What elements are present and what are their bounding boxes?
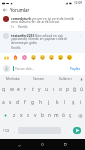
staticText: k	[56, 99, 59, 106]
button[interactable]: w	[8, 83, 15, 96]
button[interactable]: Home	[38, 140, 47, 149]
staticText: x	[20, 112, 23, 119]
staticText: q	[2, 86, 6, 93]
button[interactable]: k	[53, 96, 61, 109]
staticText: ı	[53, 86, 55, 93]
button[interactable]: ö	[60, 109, 67, 122]
button[interactable]: ,	[12, 127, 17, 134]
button[interactable]: Emoji	[38, 53, 47, 61]
button[interactable]: Back	[15, 141, 23, 149]
staticText: t	[32, 86, 34, 93]
staticText: ç	[69, 112, 72, 119]
button[interactable]: Kullanici	[52, 75, 78, 83]
staticText: 12:09	[74, 1, 83, 5]
staticText: y	[38, 86, 41, 93]
staticText: ü	[80, 86, 84, 93]
staticText: m	[54, 112, 59, 119]
button[interactable]: Recents	[61, 140, 70, 149]
button[interactable]: Emoji	[11, 53, 20, 61]
button[interactable]: u	[43, 83, 50, 96]
button[interactable]: m	[53, 109, 60, 122]
button[interactable]: Emoji	[65, 53, 74, 61]
staticText: Yanitla	[18, 25, 28, 29]
button[interactable]: Emoji	[47, 53, 56, 61]
staticText: ğ	[73, 86, 77, 93]
button[interactable]: Merhaba	[0, 75, 26, 83]
button[interactable]: s	[7, 96, 14, 109]
button[interactable]: y	[36, 83, 43, 96]
staticText: u	[45, 86, 49, 93]
staticText: z	[13, 112, 16, 119]
staticText: o	[59, 86, 62, 93]
button[interactable]: r	[22, 83, 29, 96]
button[interactable]: l	[61, 96, 69, 109]
button[interactable]: z	[11, 109, 18, 122]
button[interactable]: p	[64, 83, 71, 96]
button[interactable]: b	[39, 109, 46, 122]
staticText: g	[31, 99, 35, 106]
button[interactable]: t	[29, 83, 36, 96]
button[interactable]: Emoji	[56, 53, 65, 61]
staticText: v	[34, 112, 37, 119]
staticText: p	[66, 86, 70, 93]
button[interactable]: x	[18, 109, 25, 122]
staticText: b	[41, 112, 45, 119]
button[interactable]: Back	[0, 6, 10, 14]
button[interactable]: Paylas	[69, 65, 82, 71]
button[interactable]: c	[25, 109, 32, 122]
button[interactable]: Emoji	[29, 53, 38, 61]
button[interactable]: q	[0, 83, 8, 96]
staticText: d	[16, 99, 20, 106]
button[interactable]: ç	[67, 109, 74, 122]
staticText: Yorum ekle...	[15, 67, 35, 71]
button[interactable]: Emoji	[20, 53, 29, 61]
staticText: n	[48, 112, 52, 119]
staticText: j	[48, 99, 50, 106]
staticText: s	[9, 99, 12, 106]
staticText: Paylas	[70, 66, 81, 70]
staticText: ş	[72, 99, 75, 106]
button[interactable]: v	[32, 109, 39, 122]
button[interactable]: e	[15, 83, 22, 96]
button[interactable]: f	[21, 96, 29, 109]
staticText: ö	[62, 112, 65, 119]
button[interactable]: g	[29, 96, 37, 109]
button[interactable]: d	[14, 96, 21, 109]
button[interactable]: Backspace	[74, 109, 85, 122]
staticText: Kullanici	[59, 77, 72, 81]
button[interactable]: ?123	[1, 127, 12, 134]
button[interactable]: i	[77, 96, 85, 109]
staticText: testseifer2233 Bonusfood en cok yapisand…	[11, 33, 76, 45]
staticText: a	[2, 99, 5, 106]
button[interactable]: h	[37, 96, 45, 109]
staticText: f	[24, 99, 26, 106]
button[interactable]: Tamam	[26, 75, 52, 83]
staticText: Tamam	[33, 77, 45, 81]
button[interactable]: a	[0, 96, 7, 109]
button[interactable]: testseifer2233 Bonusfood en cok yapisand…	[0, 31, 85, 51]
staticText: w	[10, 86, 14, 93]
button[interactable]: Shift	[0, 109, 11, 122]
button[interactable]: ğ	[71, 83, 78, 96]
staticText: i	[80, 99, 82, 106]
staticText: 1s	[11, 25, 15, 29]
staticText: Yorumlar	[10, 7, 30, 13]
button[interactable]: Send	[69, 127, 84, 134]
button[interactable]: ı	[50, 83, 57, 96]
staticText: comedyturk yorum en iyi yerinde kesildi …	[11, 16, 76, 24]
button[interactable]: comedyturk yorum en iyi yerinde kesildi …	[0, 14, 85, 31]
button[interactable]: ü	[78, 83, 85, 96]
button[interactable]: Emoji	[2, 53, 11, 61]
button[interactable]: Voice input	[78, 75, 85, 83]
button[interactable]: Like	[77, 16, 83, 22]
staticText: ?123	[3, 129, 10, 133]
button[interactable]: o	[57, 83, 64, 96]
staticText: r	[24, 86, 27, 93]
staticText: e	[17, 86, 20, 93]
button[interactable]: n	[46, 109, 53, 122]
button[interactable]: j	[45, 96, 53, 109]
button[interactable]: ş	[69, 96, 77, 109]
